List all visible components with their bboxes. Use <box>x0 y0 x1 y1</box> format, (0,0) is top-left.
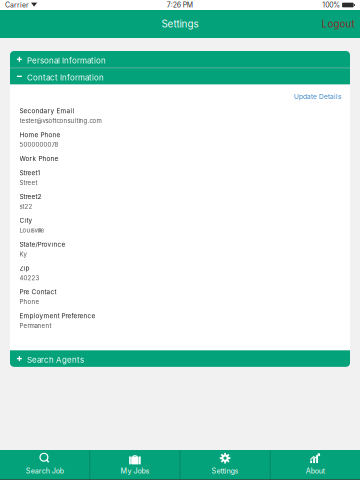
staticText: Personal Information <box>27 56 106 65</box>
staticText: Phone <box>19 298 39 305</box>
staticText: About <box>306 466 325 475</box>
staticText: City <box>19 217 32 224</box>
staticText: Settings <box>212 466 239 475</box>
staticText: My Jobs <box>120 466 149 475</box>
button[interactable]: About <box>270 450 360 479</box>
staticText: 7:26 PM <box>167 1 193 9</box>
button[interactable]: Search Job <box>0 450 89 479</box>
staticText: Zip <box>19 264 29 272</box>
staticText: Louisville <box>19 227 44 234</box>
staticText: Work Phone <box>19 155 58 162</box>
button[interactable]: Contact Information <box>10 68 350 85</box>
staticText: 100% <box>322 1 340 9</box>
staticText: Search Job <box>26 466 64 475</box>
staticText: Ky <box>19 250 26 258</box>
button[interactable]: Settings <box>180 450 270 479</box>
staticText: Street1 <box>19 169 40 177</box>
staticText: Employment Preference <box>19 312 95 320</box>
button[interactable]: Logout <box>316 13 360 35</box>
staticText: State/Province <box>19 240 65 248</box>
staticText: Contact Information <box>27 73 104 82</box>
staticText: Secondary Email <box>19 107 74 115</box>
staticText: 40223 <box>19 274 39 282</box>
staticText: Permanent <box>19 322 51 329</box>
staticText: tester@vsoftconsulting.com <box>19 117 101 124</box>
staticText: Logout <box>321 18 354 30</box>
staticText: Update Details <box>294 93 342 101</box>
staticText: st22 <box>19 203 32 210</box>
staticText: Pre Contact <box>19 288 56 296</box>
button[interactable]: Personal Information <box>10 51 350 67</box>
staticText: Settings <box>161 18 198 30</box>
staticText: Search Agents <box>27 355 84 365</box>
button[interactable]: My Jobs <box>90 450 180 479</box>
button[interactable]: Search Agents <box>10 350 350 367</box>
staticText: Street <box>19 179 37 186</box>
staticText: Carrier <box>5 1 29 9</box>
staticText: Street2 <box>19 193 41 200</box>
button[interactable]: Update Details <box>293 93 343 101</box>
staticText: 5000000078 <box>19 141 58 148</box>
staticText: Home Phone <box>19 131 60 139</box>
